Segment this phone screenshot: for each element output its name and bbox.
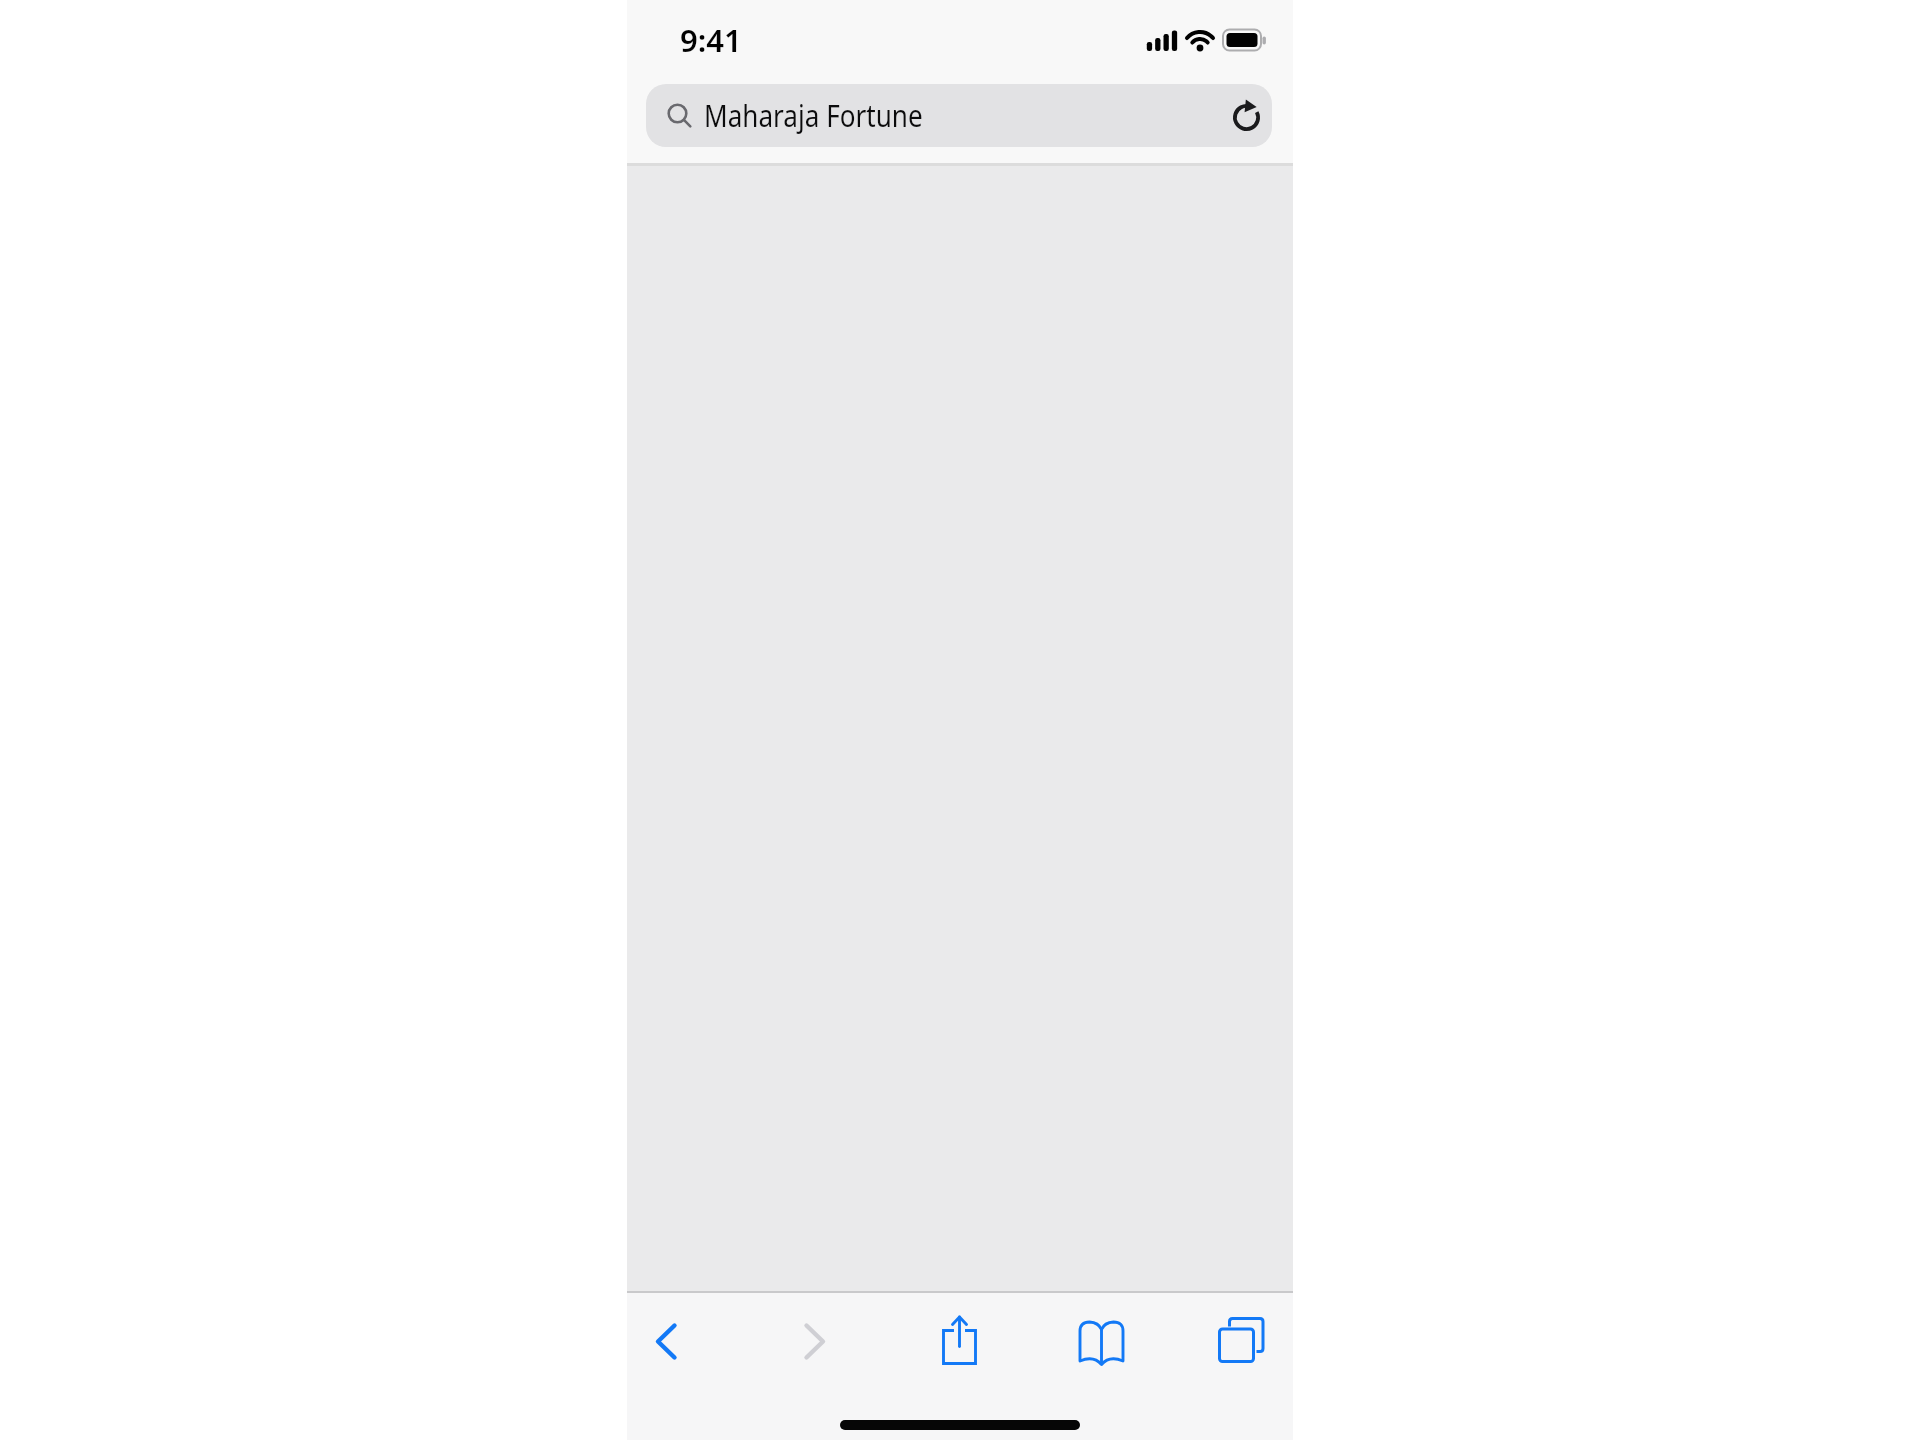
staticText: 9:41 bbox=[680, 19, 742, 55]
button[interactable] bbox=[927, 1305, 993, 1371]
button[interactable] bbox=[783, 1309, 847, 1373]
button[interactable] bbox=[634, 1309, 698, 1373]
staticText: Maharaja Fortune bbox=[704, 95, 923, 136]
button[interactable] bbox=[1216, 84, 1272, 147]
button[interactable] bbox=[1069, 1310, 1135, 1376]
button[interactable] bbox=[1209, 1308, 1275, 1374]
button[interactable]: Maharaja Fortune bbox=[646, 84, 1272, 147]
